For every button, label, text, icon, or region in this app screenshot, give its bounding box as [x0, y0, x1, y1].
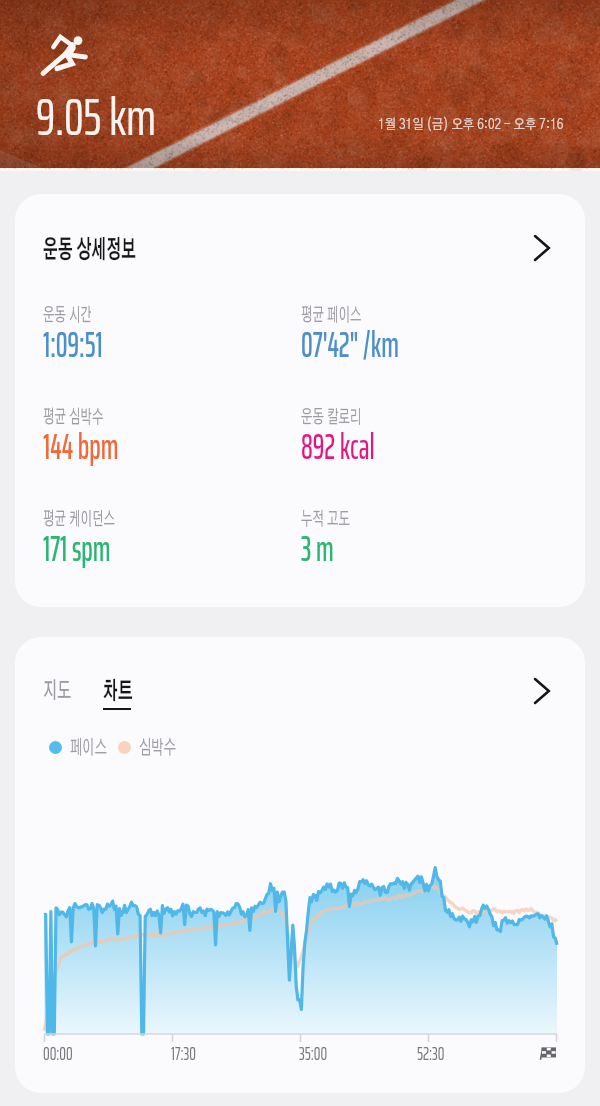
staticText: 9.05 km	[36, 76, 157, 158]
button[interactable]: 페이스	[34, 736, 92, 758]
staticText: 차트	[103, 680, 133, 704]
staticText: 144 bpm	[43, 418, 118, 475]
staticText: 1:09:51	[43, 316, 103, 373]
staticText: 1월 31일 (금) 오후 6:02 - 오후 7:16	[378, 118, 563, 132]
staticText: 운동 상세정보	[43, 238, 137, 263]
staticText: 운동 시간	[43, 306, 92, 325]
other: Running workout	[38, 33, 90, 78]
staticText: 평균 케이던스	[43, 510, 115, 529]
staticText: 누적 고도	[301, 510, 350, 529]
staticText: 지도	[43, 680, 71, 703]
staticText: 35:00	[299, 1037, 328, 1068]
button[interactable]: 운동 상세정보	[15, 194, 585, 607]
staticText: 평균 심박수	[43, 408, 103, 427]
staticText: 평균 페이스	[301, 306, 361, 325]
button[interactable]: 지도	[36, 673, 95, 710]
staticText: 페이스	[70, 738, 107, 758]
staticText: 52:30	[417, 1037, 445, 1068]
staticText: 171 spm	[43, 520, 111, 577]
staticText: 운동 칼로리	[301, 408, 361, 427]
staticText: 892 kcal	[301, 418, 375, 475]
button[interactable]: Expand chart	[519, 669, 563, 713]
staticText: 07'42" /km	[301, 316, 399, 373]
staticText: 00:00	[43, 1037, 73, 1068]
staticText: 심박수	[139, 738, 176, 758]
staticText: 17:30	[171, 1037, 196, 1068]
button[interactable]: 차트	[96, 673, 158, 717]
staticText: 3 m	[301, 520, 334, 577]
other: Finish	[537, 1039, 556, 1060]
button[interactable]: View workout details	[519, 226, 563, 270]
